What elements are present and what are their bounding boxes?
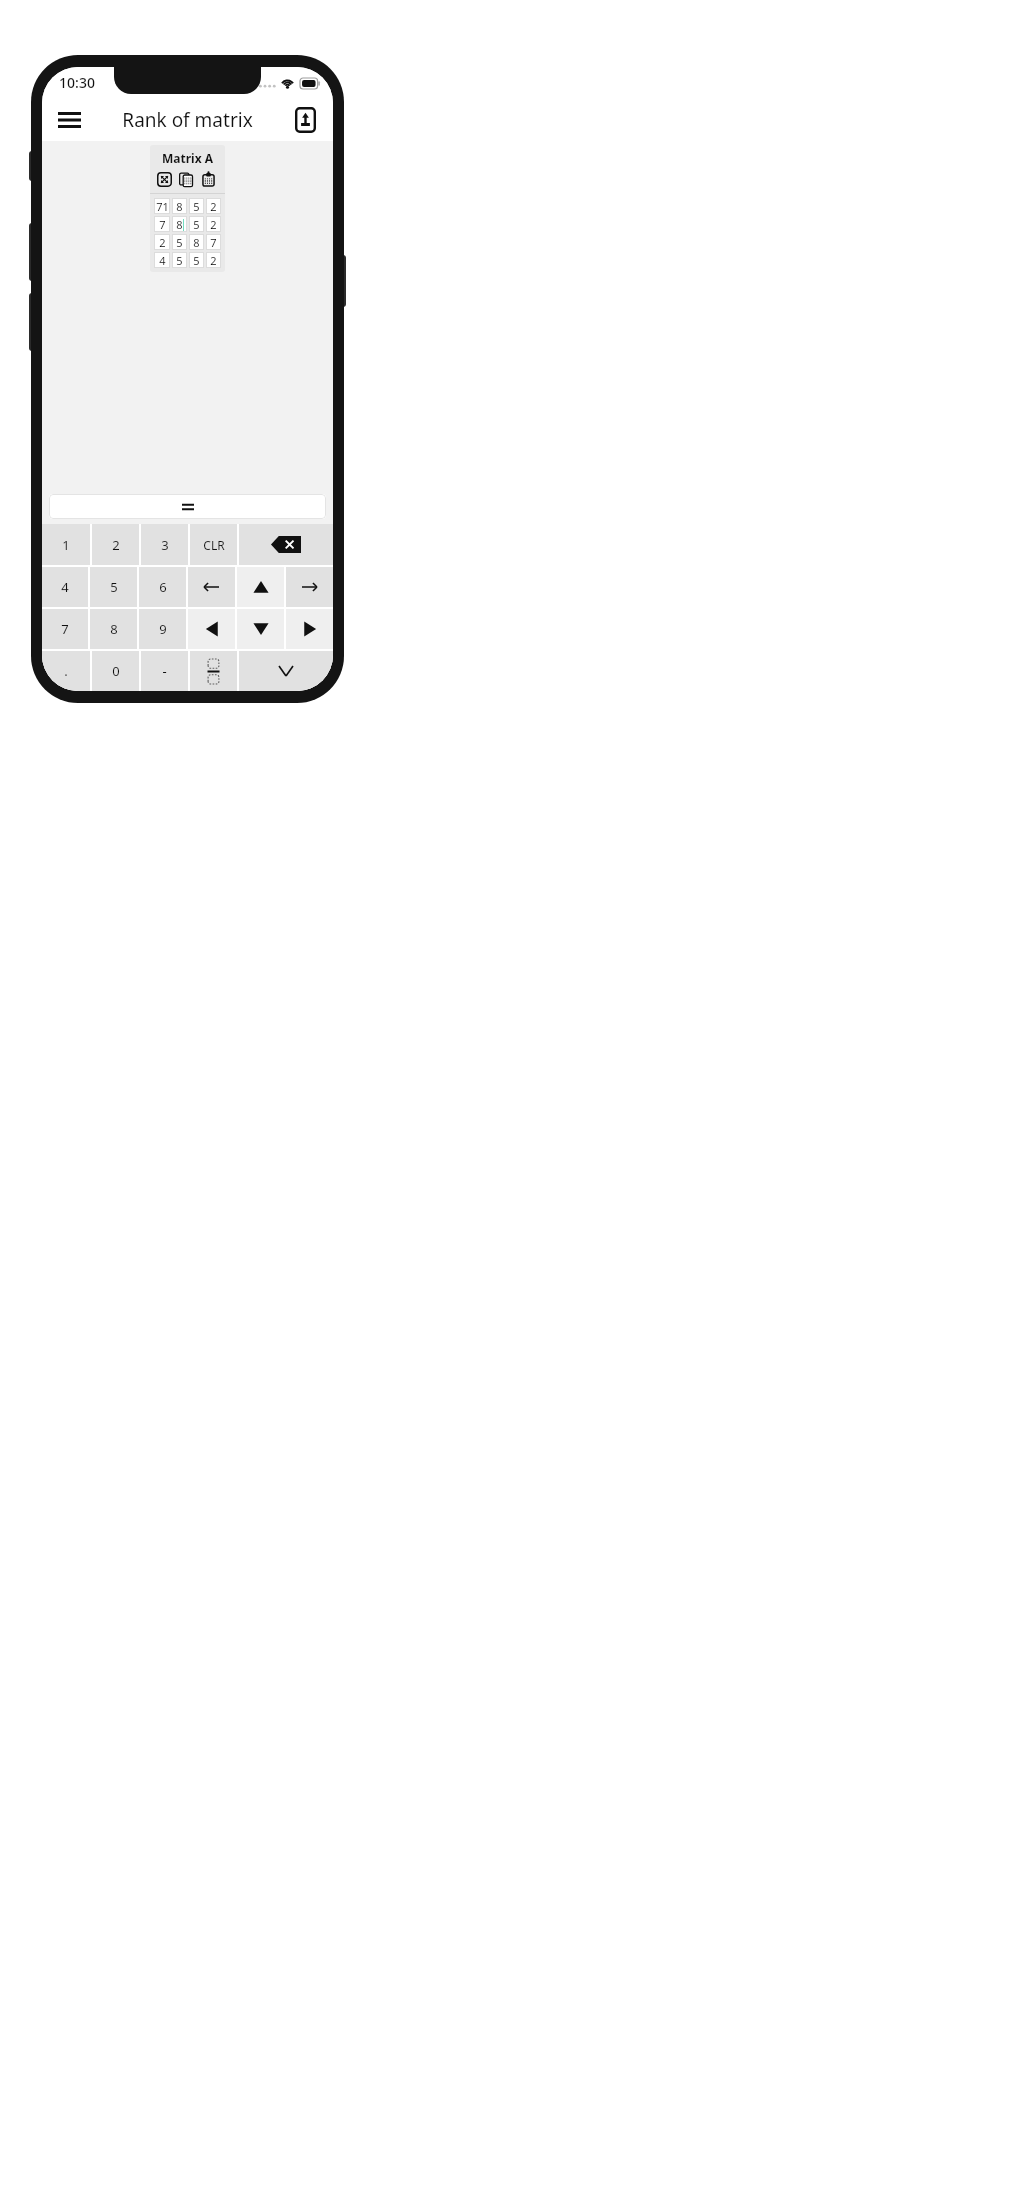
staticText: 5 — [193, 217, 200, 232]
button[interactable]: 2 — [92, 524, 139, 565]
button[interactable]: Paste — [201, 172, 216, 187]
button[interactable]: 7 — [206, 234, 221, 250]
staticText: 6 — [159, 578, 167, 596]
button[interactable]: CLR — [190, 524, 237, 565]
staticText: 4 — [61, 578, 69, 596]
staticText: 2 — [210, 253, 217, 268]
staticText: 5 — [110, 578, 118, 596]
button[interactable]: 9 — [139, 609, 186, 649]
staticText: 2 — [210, 199, 217, 214]
button[interactable]: Copy — [179, 172, 194, 187]
button[interactable]: Previous — [188, 567, 235, 607]
staticText: 7 — [159, 217, 166, 232]
button[interactable]: Right — [286, 609, 333, 649]
button[interactable]: Export — [286, 101, 324, 139]
staticText: 2 — [112, 536, 120, 554]
staticText: Matrix A — [150, 150, 225, 166]
button[interactable]: 3 — [141, 524, 188, 565]
button[interactable]: 4 — [42, 567, 88, 607]
button[interactable]: 5 — [172, 252, 187, 268]
button[interactable]: 5 — [90, 567, 137, 607]
button[interactable]: 2 — [154, 234, 170, 250]
button[interactable]: Backspace — [239, 524, 333, 565]
button[interactable]: 2 — [206, 198, 221, 214]
button[interactable]: 8 — [189, 234, 204, 250]
staticText: 0 — [112, 662, 120, 680]
button[interactable]: - — [141, 651, 188, 691]
staticText: 5 — [176, 253, 183, 268]
button[interactable]: 7 — [154, 216, 170, 232]
staticText: 10:30 — [59, 73, 95, 92]
button[interactable]: 8 — [172, 198, 187, 214]
button[interactable]: 5 — [189, 252, 204, 268]
button[interactable]: 7 — [42, 609, 88, 649]
staticText: 4 — [159, 253, 166, 268]
staticText: . — [64, 662, 68, 680]
button[interactable]: Resize — [157, 172, 172, 187]
staticText: 3 — [161, 536, 169, 554]
staticText: 2 — [159, 235, 166, 250]
button[interactable]: 5 — [172, 234, 187, 250]
button[interactable]: 1 — [42, 524, 90, 565]
button[interactable]: Up — [237, 567, 284, 607]
staticText: 2 — [210, 217, 217, 232]
button[interactable]: Left — [188, 609, 235, 649]
staticText: 71 — [156, 199, 169, 214]
button[interactable]: 4 — [154, 252, 170, 268]
staticText: 8 — [176, 199, 183, 214]
button[interactable]: 0 — [92, 651, 139, 691]
staticText: 7 — [210, 235, 217, 250]
staticText: 1 — [62, 536, 70, 554]
button[interactable]: 2 — [206, 252, 221, 268]
button[interactable]: 2 — [206, 216, 221, 232]
staticText: 5 — [193, 253, 200, 268]
staticText: 8 — [193, 235, 200, 250]
staticText: 5 — [176, 235, 183, 250]
button[interactable]: Menu — [49, 100, 89, 140]
staticText: Rank of matrix — [122, 107, 253, 133]
staticText: 8 — [110, 620, 118, 638]
button[interactable]: Down — [237, 609, 284, 649]
button[interactable]: Equals — [49, 494, 326, 519]
button[interactable]: Fraction — [190, 651, 237, 691]
button[interactable]: 5 — [189, 198, 204, 214]
button[interactable]: 71 — [154, 198, 170, 214]
button[interactable]: Hide keyboard — [239, 651, 333, 691]
button[interactable]: 8 — [90, 609, 137, 649]
button[interactable]: 6 — [139, 567, 186, 607]
staticText: CLR — [203, 537, 225, 553]
staticText: 9 — [159, 620, 167, 638]
staticText: 5 — [193, 199, 200, 214]
staticText: 8 — [176, 217, 183, 232]
button[interactable]: 8 — [172, 216, 187, 232]
button[interactable]: Next — [286, 567, 333, 607]
button[interactable]: 5 — [189, 216, 204, 232]
staticText: 7 — [61, 620, 69, 638]
button[interactable]: . — [42, 651, 90, 691]
staticText: - — [162, 662, 167, 680]
